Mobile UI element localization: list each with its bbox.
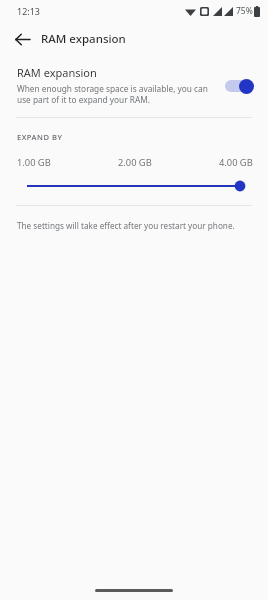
staticText: 2.00 GB	[118, 156, 152, 169]
button[interactable]: RAM expansion	[0, 56, 268, 110]
staticText: RAM expansion	[17, 65, 97, 80]
staticText: 75%	[236, 5, 253, 17]
staticText: When enough storage space is available, …	[17, 83, 215, 106]
button[interactable]: Back	[9, 26, 35, 52]
button[interactable]: Expand by slider	[0, 178, 268, 194]
staticText: 1.00 GB	[17, 156, 51, 169]
staticText: The settings will take effect after you …	[17, 220, 235, 231]
staticText: 12:13	[17, 5, 41, 17]
staticText: EXPAND BY	[17, 132, 63, 142]
staticText: RAM expansion	[41, 31, 126, 47]
staticText: 4.00 GB	[219, 156, 253, 169]
button[interactable]: RAM expansion toggle	[221, 76, 255, 96]
